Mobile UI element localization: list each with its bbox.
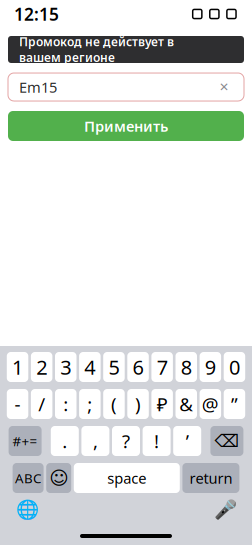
staticText: , <box>93 429 98 453</box>
staticText: Em15 <box>19 77 57 97</box>
staticText: 🎤 <box>213 499 236 521</box>
staticText: space <box>107 468 146 488</box>
button[interactable]: & <box>175 389 197 419</box>
staticText: 0 <box>229 354 240 380</box>
button[interactable]: . <box>51 426 79 456</box>
staticText: ; <box>87 392 92 416</box>
button[interactable]: ₽ <box>151 389 173 419</box>
staticText: @ <box>202 392 219 416</box>
button[interactable]: ? <box>112 426 140 456</box>
button[interactable]: ! <box>143 426 171 456</box>
staticText: ! <box>154 429 159 453</box>
button[interactable]: More symbols <box>9 426 42 456</box>
staticText: 6 <box>133 354 144 380</box>
button[interactable]: , <box>81 426 109 456</box>
staticText: ✕ <box>219 80 229 94</box>
staticText: ₽ <box>157 392 168 416</box>
button[interactable]: 4 <box>79 352 101 382</box>
staticText: Промокод не действует в вашем регионе <box>19 34 174 65</box>
button[interactable]: ’ <box>173 426 201 456</box>
button[interactable]: ) <box>127 389 149 419</box>
button[interactable]: Change keyboard language <box>14 497 40 523</box>
staticText: ? <box>122 429 130 453</box>
button[interactable]: Letters keyboard <box>13 463 44 493</box>
button[interactable]: / <box>31 389 52 419</box>
button[interactable]: 2 <box>31 352 52 382</box>
staticText: ) <box>135 392 141 416</box>
staticText: / <box>38 392 45 416</box>
button[interactable]: 1 <box>7 352 28 382</box>
staticText: & <box>179 392 193 416</box>
button[interactable]: 5 <box>103 352 125 382</box>
button[interactable]: @ <box>200 389 221 419</box>
staticText: Применить <box>84 116 168 136</box>
button[interactable]: - <box>7 389 28 419</box>
button[interactable]: Emoji <box>46 463 71 493</box>
staticText: 3 <box>60 354 71 380</box>
staticText: 1 <box>12 354 23 380</box>
button[interactable]: Clear text <box>215 78 233 96</box>
staticText: ’ <box>186 429 189 453</box>
button[interactable]: space <box>74 463 180 493</box>
button[interactable]: 3 <box>55 352 76 382</box>
staticText: 4 <box>84 354 95 380</box>
staticText: ” <box>231 392 238 416</box>
button[interactable]: Delete <box>210 426 243 456</box>
button[interactable]: return <box>182 463 239 493</box>
staticText: ABC <box>15 469 41 487</box>
staticText: #+= <box>13 432 38 450</box>
staticText: 8 <box>181 354 192 380</box>
staticText: 2 <box>36 354 47 380</box>
staticText: return <box>189 468 232 488</box>
button[interactable]: ” <box>224 389 245 419</box>
button[interactable]: 9 <box>200 352 221 382</box>
button[interactable]: Dictation <box>212 497 238 523</box>
button[interactable]: Применить <box>8 111 244 141</box>
staticText: 5 <box>108 354 119 380</box>
button[interactable]: 8 <box>175 352 197 382</box>
button[interactable]: ; <box>79 389 101 419</box>
button[interactable]: 7 <box>151 352 173 382</box>
button[interactable]: 0 <box>224 352 245 382</box>
staticText: 🌐 <box>15 499 38 521</box>
button[interactable]: ( <box>103 389 125 419</box>
button[interactable]: 6 <box>127 352 149 382</box>
staticText: ( <box>111 392 117 416</box>
staticText: 9 <box>205 354 216 380</box>
staticText: 12:15 <box>14 2 59 25</box>
staticText: 7 <box>157 354 168 380</box>
staticText: - <box>14 392 20 416</box>
staticText: ⌫ <box>214 431 239 451</box>
button[interactable]: : <box>55 389 76 419</box>
staticText: : <box>63 392 68 416</box>
staticText: . <box>62 429 67 453</box>
staticText: ☺ <box>49 467 68 489</box>
